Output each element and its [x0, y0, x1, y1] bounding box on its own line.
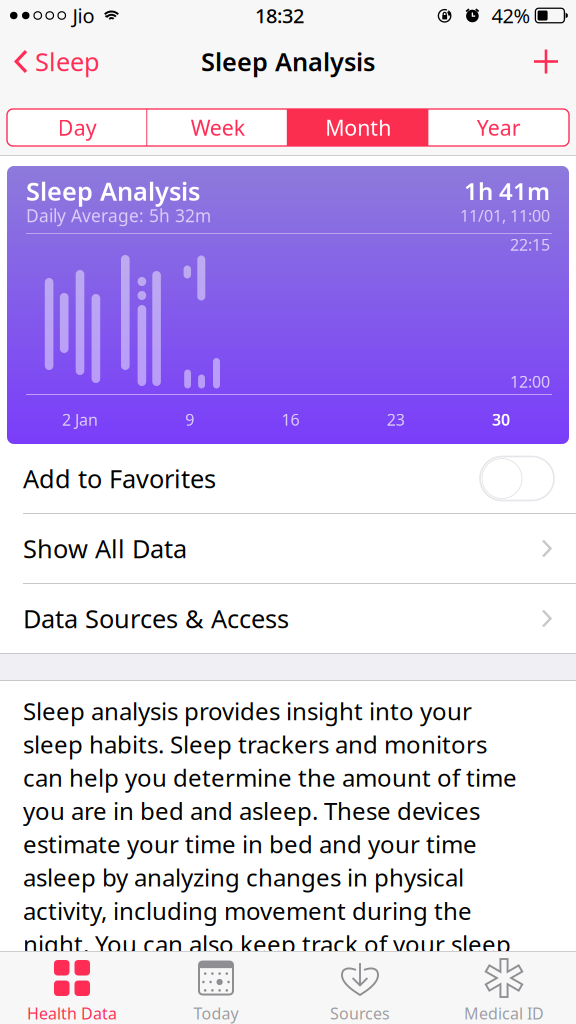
button[interactable]: Add	[516, 36, 576, 87]
staticText: Sleep Analysis	[26, 174, 200, 208]
button[interactable]: Medical ID	[432, 951, 576, 1024]
staticText: Jio	[72, 2, 94, 29]
staticText: Sleep Analysis	[201, 45, 375, 78]
button[interactable]: Today	[144, 951, 288, 1024]
staticText: Medical ID	[464, 1003, 544, 1024]
staticText: Sources	[330, 1003, 390, 1024]
staticText: Sleep analysis provides insight into you…	[23, 695, 517, 960]
staticText: Health Data	[27, 1003, 117, 1024]
staticText: Data Sources & Access	[23, 602, 289, 635]
staticText: 2 Jan	[62, 409, 98, 430]
staticText: Sleep	[35, 45, 100, 78]
button[interactable]: Sources	[288, 951, 432, 1024]
button[interactable]: Week	[147, 109, 288, 146]
staticText: Today	[193, 1003, 238, 1024]
staticText: 22:15	[510, 234, 550, 255]
button[interactable]: Day	[7, 109, 147, 146]
staticText: 30	[492, 409, 510, 430]
staticText: Day	[58, 113, 97, 142]
button[interactable]: Year	[428, 109, 569, 146]
staticText: 11/01, 11:00	[460, 205, 550, 226]
button[interactable]: Add to Favorites	[0, 444, 576, 513]
staticText: Year	[477, 113, 521, 142]
staticText: 23	[387, 409, 405, 430]
staticText: 12:00	[510, 371, 550, 392]
staticText: Add to Favorites	[23, 462, 216, 495]
button[interactable]: Health Data	[0, 951, 144, 1024]
staticText: 1h 41m	[464, 175, 550, 207]
button[interactable]: Data Sources & Access	[0, 584, 576, 653]
staticText: Daily Average: 5h 32m	[26, 204, 211, 227]
staticText: 16	[281, 409, 299, 430]
staticText: 18:32	[255, 2, 304, 29]
button[interactable]: Month	[288, 109, 428, 146]
staticText: Month	[325, 113, 391, 142]
staticText: 9	[185, 409, 194, 430]
button[interactable]: Show All Data	[0, 514, 576, 583]
staticText: 42%	[491, 2, 530, 29]
staticText: Week	[191, 113, 245, 142]
staticText: Show All Data	[23, 532, 187, 565]
button[interactable]: Sleep	[0, 36, 110, 87]
